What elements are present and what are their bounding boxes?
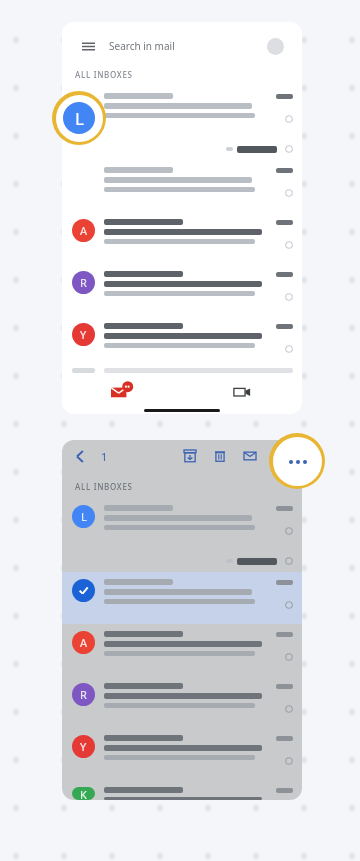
button[interactable]: More options [275,447,293,465]
staticText: Y [80,327,87,342]
button[interactable]: R [62,676,302,728]
staticText: ALL INBOXES [75,69,133,80]
staticText: A [80,223,88,238]
button[interactable]: Star [285,345,293,353]
staticText: R [80,275,87,290]
button[interactable]: Y [62,728,302,780]
button[interactable]: L [62,498,302,550]
button[interactable]: Account [267,38,284,55]
button[interactable]: Y [62,316,302,368]
button[interactable]: Mark as read [241,447,259,465]
button[interactable]: Star [62,160,302,212]
button[interactable]: K [62,780,302,800]
staticText: 1 [101,449,108,464]
other: Menu [82,40,95,53]
staticText: L [81,509,87,524]
staticText: K [80,787,87,800]
button[interactable]: Star [285,601,293,609]
button[interactable]: Star [285,653,293,661]
button[interactable]: Meet [233,383,251,401]
staticText: A [80,635,88,650]
staticText: L [75,107,84,130]
button[interactable]: Delete [211,447,229,465]
button[interactable]: Mail [111,381,133,403]
staticText: Y [80,739,87,754]
staticText: R [80,687,87,702]
button[interactable]: Star [62,550,302,572]
button[interactable]: Menu [72,32,292,60]
button[interactable]: A [62,624,302,676]
button[interactable]: L [62,86,302,138]
button[interactable]: Star [285,293,293,301]
button[interactable]: Select conversation [63,102,95,134]
button[interactable]: Star [285,705,293,713]
button[interactable]: Star [285,145,293,153]
button[interactable]: Back [71,447,89,465]
button[interactable]: R [62,264,302,316]
button[interactable]: A [62,212,302,264]
staticText: ALL INBOXES [75,481,133,492]
button[interactable]: Archive [181,447,199,465]
button[interactable]: More options [273,437,322,486]
button[interactable]: Star [62,572,302,624]
staticText: Search in mail [109,39,175,53]
button[interactable]: Star [285,241,293,249]
button[interactable]: Star [285,757,293,765]
button[interactable]: Star [285,557,293,565]
button[interactable]: Star [62,138,302,160]
staticText: L [81,97,87,112]
button[interactable]: Star [285,527,293,535]
button[interactable]: Star [285,189,293,197]
button[interactable]: Star [285,115,293,123]
